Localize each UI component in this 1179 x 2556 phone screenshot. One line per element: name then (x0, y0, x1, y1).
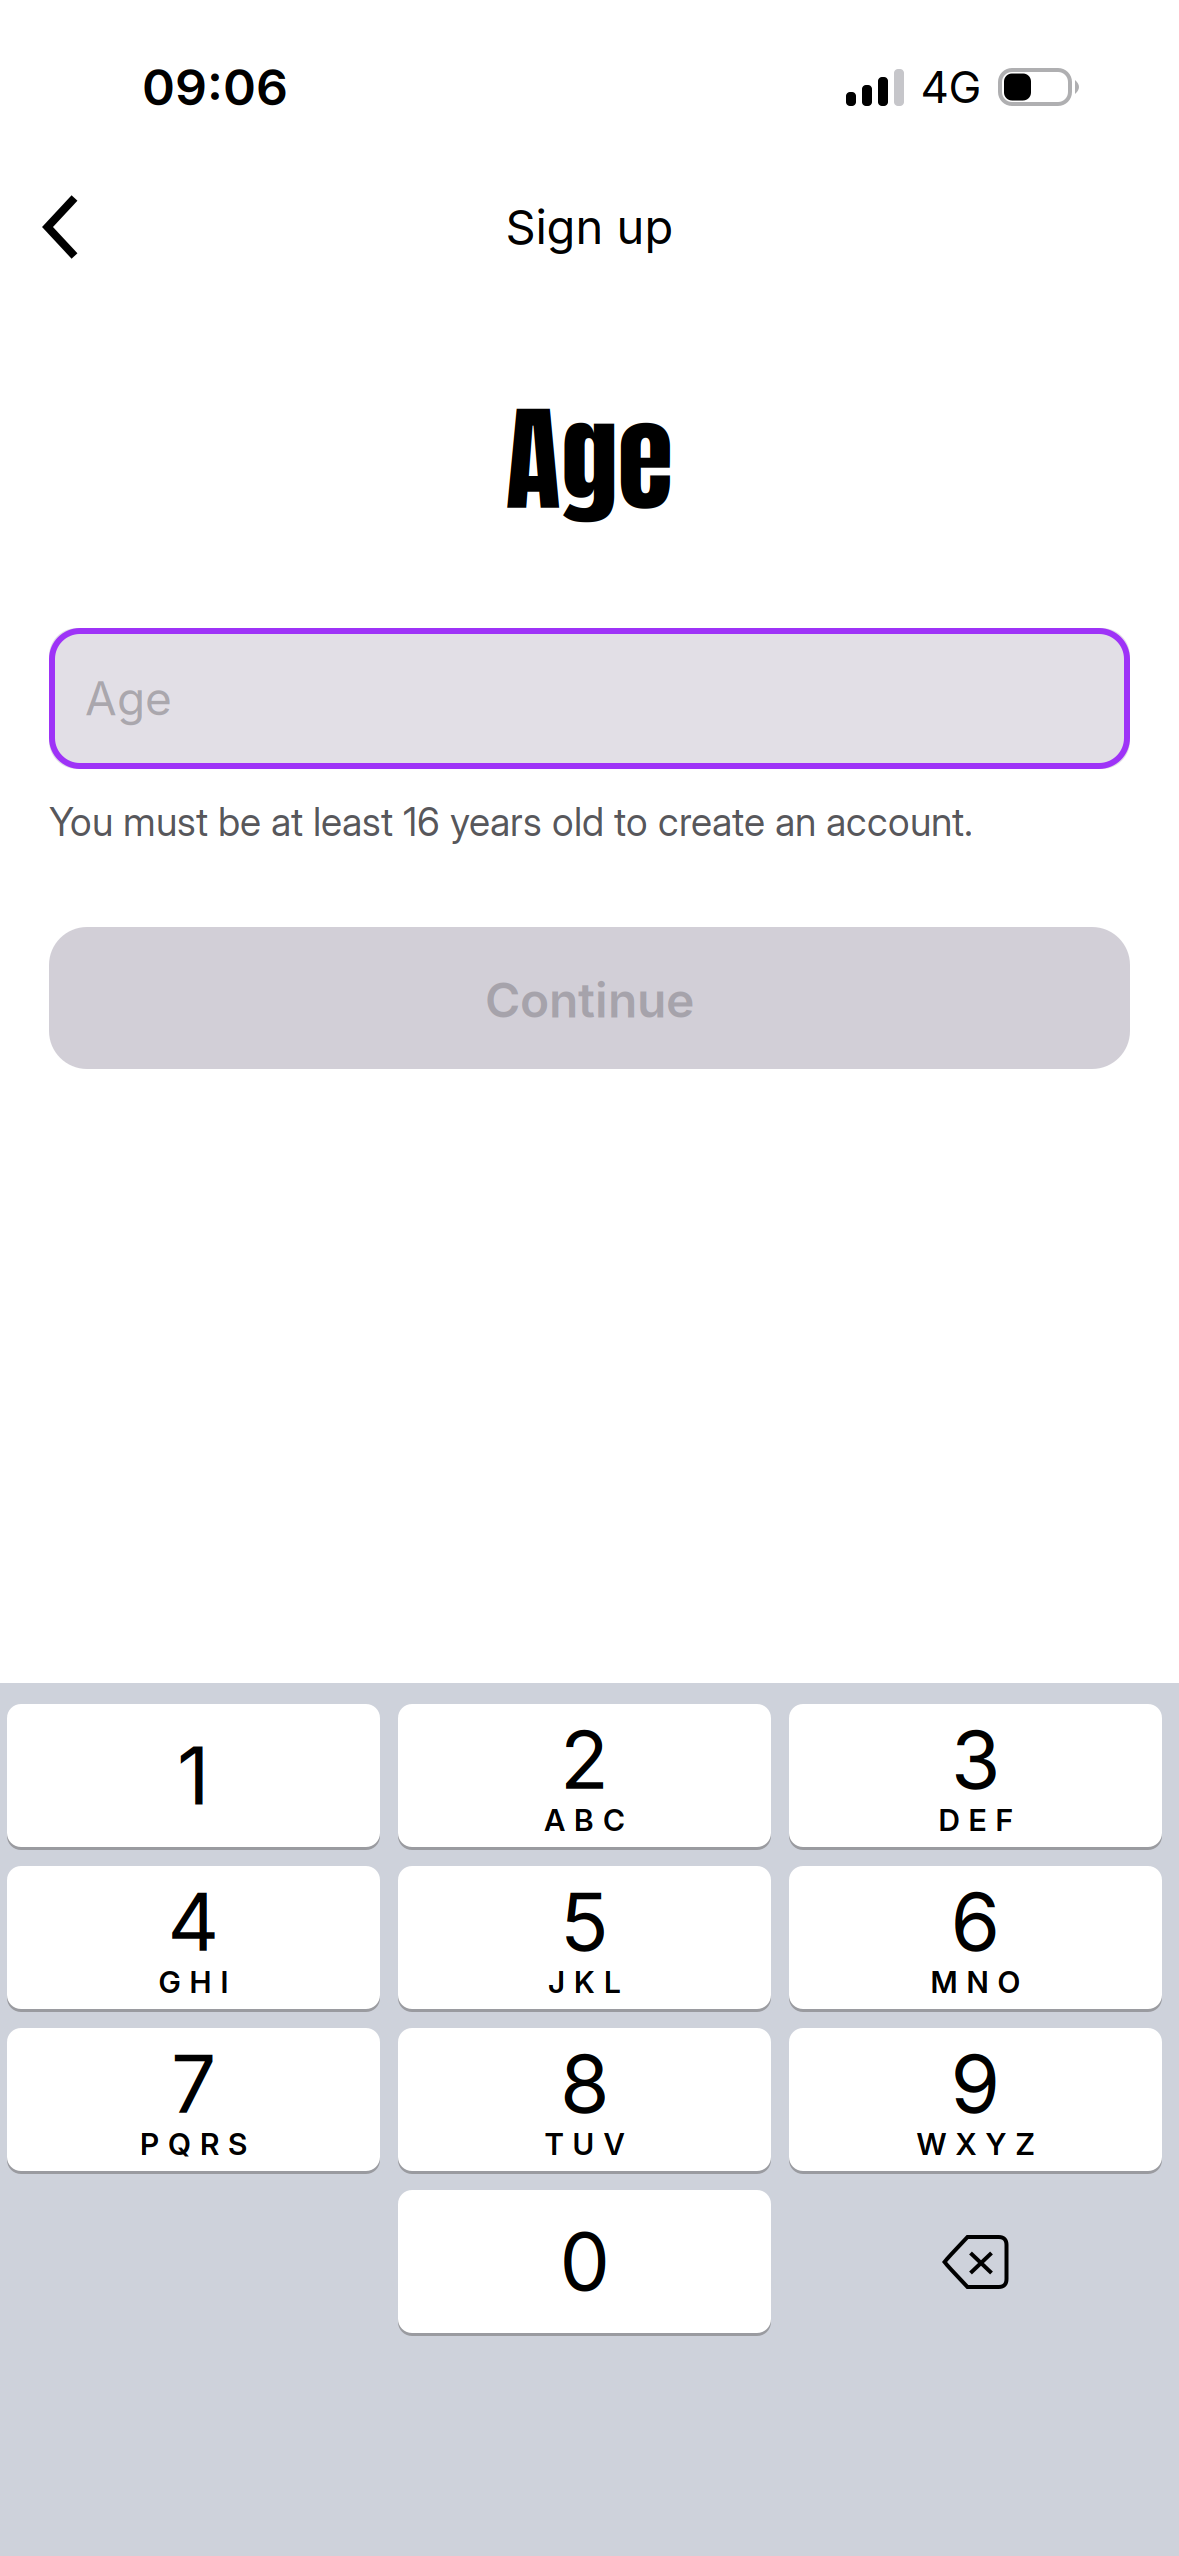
staticText: Continue (485, 971, 694, 1029)
staticText: 4G (920, 60, 981, 114)
button[interactable]: 1 (7, 1704, 380, 1850)
button[interactable]: 2 (398, 1704, 771, 1850)
button[interactable]: Back (0, 168, 122, 286)
button[interactable]: Age (49, 628, 1130, 769)
staticText: 3 (951, 1711, 1000, 1808)
staticText: PQRS (140, 2126, 247, 2162)
staticText: MNO (930, 1964, 1020, 2000)
button[interactable]: 8 (398, 2028, 771, 2174)
button[interactable]: Delete (789, 2190, 1162, 2336)
staticText: TUV (544, 2126, 624, 2162)
button[interactable]: 3 (789, 1704, 1162, 1850)
button[interactable]: 6 (789, 1866, 1162, 2012)
button[interactable]: 7 (7, 2028, 380, 2174)
staticText: GHI (158, 1964, 228, 2000)
staticText: WXYZ (916, 2126, 1034, 2162)
button[interactable]: 9 (789, 2028, 1162, 2174)
button[interactable]: 5 (398, 1866, 771, 2012)
staticText: You must be at least 16 years old to cre… (49, 799, 973, 845)
button[interactable]: Continue (49, 927, 1130, 1069)
staticText: Age (505, 374, 673, 545)
staticText: Age (85, 671, 172, 726)
staticText: 0 (559, 2213, 609, 2310)
staticText: 09:06 (142, 57, 288, 117)
staticText: 5 (560, 1873, 609, 1970)
staticText: DEF (938, 1802, 1012, 1838)
staticText: Sign up (505, 199, 673, 255)
staticText: 2 (560, 1711, 609, 1808)
staticText: JKL (548, 1964, 621, 2000)
staticText: 1 (177, 1727, 210, 1824)
staticText: 7 (171, 2035, 216, 2132)
staticText: 8 (560, 2035, 609, 2132)
staticText: 6 (950, 1873, 1000, 1970)
staticText: 9 (950, 2035, 1000, 2132)
staticText: 4 (167, 1873, 219, 1970)
button[interactable]: 4 (7, 1866, 380, 2012)
staticText: ABC (544, 1802, 625, 1838)
button[interactable]: 0 (398, 2190, 771, 2336)
